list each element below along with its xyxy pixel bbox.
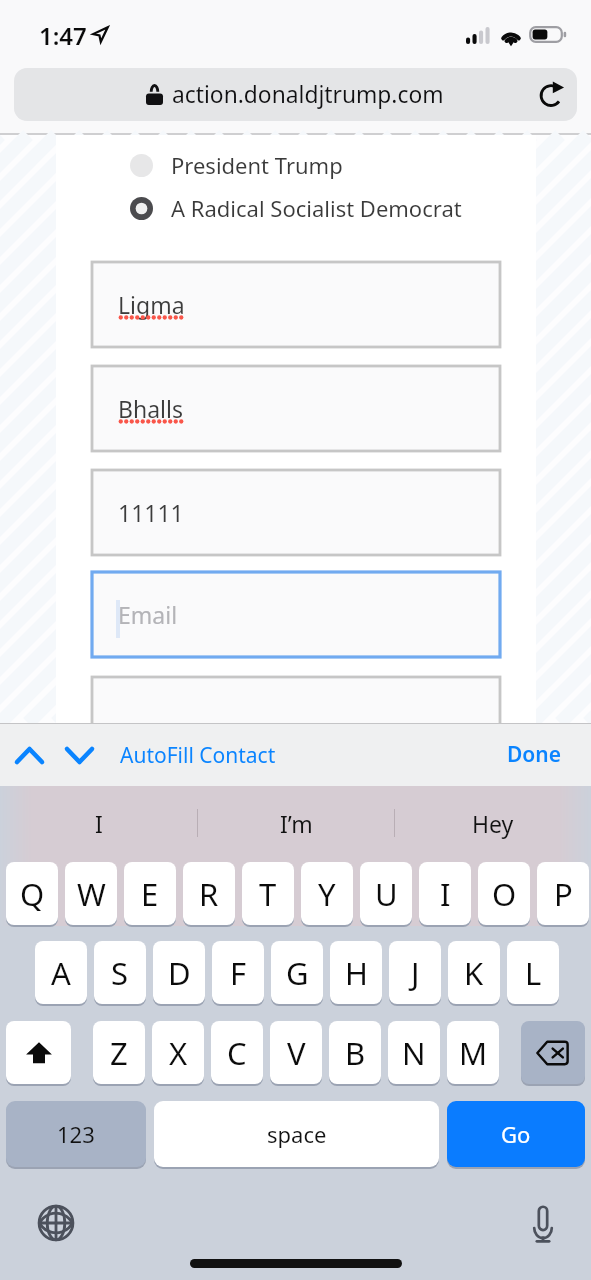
- staticText: 1:47: [39, 19, 87, 52]
- button[interactable]: E: [124, 862, 176, 925]
- staticText: T: [259, 873, 277, 915]
- button[interactable]: 123: [6, 1101, 146, 1167]
- button[interactable]: AutoFill Contact: [120, 741, 276, 770]
- button[interactable]: 11111: [92, 470, 500, 555]
- button[interactable]: M: [447, 1021, 499, 1084]
- button[interactable]: Go: [447, 1101, 585, 1167]
- button[interactable]: action.donaldjtrump.com: [14, 68, 577, 121]
- staticText: Bhalls: [118, 393, 183, 424]
- button[interactable]: R: [183, 862, 235, 925]
- staticText: Q: [20, 873, 45, 915]
- button[interactable]: X: [152, 1021, 204, 1084]
- button[interactable]: N: [388, 1021, 440, 1084]
- staticText: H: [345, 952, 368, 994]
- button[interactable]: K: [448, 941, 500, 1004]
- staticText: A Radical Socialist Democrat: [171, 193, 462, 223]
- staticText: X: [169, 1032, 188, 1074]
- button[interactable]: A Radical Socialist Democrat: [124, 189, 524, 227]
- button[interactable]: L: [507, 941, 559, 1004]
- staticText: W: [77, 873, 106, 915]
- staticText: I’m: [280, 808, 313, 839]
- button[interactable]: Dictation: [532, 1206, 554, 1243]
- staticText: V: [287, 1032, 306, 1074]
- button[interactable]: Hey: [395, 786, 591, 860]
- button[interactable]: Z: [93, 1021, 145, 1084]
- staticText: E: [141, 873, 159, 915]
- button[interactable]: Reload page: [530, 74, 572, 116]
- staticText: M: [459, 1032, 488, 1074]
- staticText: S: [111, 952, 129, 994]
- staticText: 123: [57, 1119, 95, 1149]
- staticText: Ligma: [118, 289, 185, 320]
- staticText: 11111: [118, 497, 184, 528]
- button[interactable]: A: [35, 941, 87, 1004]
- button[interactable]: President Trump: [124, 146, 524, 184]
- staticText: L: [525, 952, 542, 994]
- button[interactable]: Ligma: [92, 262, 500, 347]
- staticText: K: [464, 952, 484, 994]
- staticText: President Trump: [171, 150, 343, 180]
- staticText: AutoFill Contact: [120, 741, 276, 770]
- button[interactable]: D: [153, 941, 205, 1004]
- staticText: I: [95, 808, 103, 839]
- button[interactable]: Bhalls: [92, 366, 500, 451]
- button[interactable]: F: [212, 941, 264, 1004]
- staticText: Email: [118, 599, 178, 630]
- staticText: O: [492, 873, 517, 915]
- staticText: Done: [507, 740, 562, 769]
- button[interactable]: Previous field: [7, 733, 51, 777]
- button[interactable]: I’m: [198, 786, 394, 860]
- staticText: A: [51, 952, 71, 994]
- button[interactable]: P: [537, 862, 589, 925]
- button[interactable]: T: [242, 862, 294, 925]
- staticText: R: [199, 873, 219, 915]
- staticText: N: [402, 1032, 426, 1074]
- staticText: P: [554, 873, 573, 915]
- button[interactable]: Q: [6, 862, 58, 925]
- staticText: I: [440, 873, 451, 915]
- button[interactable]: I: [419, 862, 471, 925]
- staticText: Go: [501, 1119, 531, 1149]
- button[interactable]: Done: [507, 740, 562, 769]
- button[interactable]: Email: [92, 572, 500, 657]
- staticText: Z: [110, 1032, 128, 1074]
- button[interactable]: space: [154, 1101, 439, 1167]
- staticText: J: [411, 952, 420, 994]
- staticText: Y: [318, 873, 336, 915]
- staticText: space: [267, 1119, 327, 1149]
- staticText: action.donaldjtrump.com: [172, 79, 444, 110]
- staticText: Hey: [472, 808, 514, 839]
- button[interactable]: C: [211, 1021, 263, 1084]
- button[interactable]: Y: [301, 862, 353, 925]
- button[interactable]: G: [271, 941, 323, 1004]
- button[interactable]: O: [478, 862, 530, 925]
- button[interactable]: U: [360, 862, 412, 925]
- button[interactable]: B: [329, 1021, 381, 1084]
- staticText: U: [375, 873, 398, 915]
- staticText: G: [286, 952, 309, 994]
- button[interactable]: Shift: [6, 1021, 71, 1084]
- button[interactable]: H: [330, 941, 382, 1004]
- staticText: F: [230, 952, 247, 994]
- button[interactable]: S: [94, 941, 146, 1004]
- button[interactable]: J: [389, 941, 441, 1004]
- button[interactable]: V: [270, 1021, 322, 1084]
- button[interactable]: I: [0, 786, 197, 860]
- staticText: C: [227, 1032, 247, 1074]
- button[interactable]: [92, 677, 500, 762]
- button[interactable]: W: [65, 862, 117, 925]
- button[interactable]: Next field: [57, 733, 101, 777]
- button[interactable]: Backspace: [521, 1021, 585, 1084]
- staticText: D: [168, 952, 191, 994]
- button[interactable]: Change keyboard: [38, 1205, 74, 1241]
- staticText: B: [345, 1032, 366, 1074]
